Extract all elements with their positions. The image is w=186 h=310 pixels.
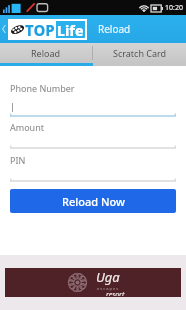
button[interactable]: Uga Resorts advertisement <box>5 268 181 297</box>
staticText: e s c a p e s <box>97 286 119 291</box>
staticText: Reload Now <box>62 194 125 209</box>
staticText: Amount <box>10 121 44 133</box>
staticText: resort <box>106 290 125 296</box>
staticText: TOP <box>25 20 55 40</box>
button[interactable]: Scratch Card <box>93 43 186 63</box>
button[interactable]: Reload <box>0 43 92 63</box>
staticText: Reload <box>98 22 131 36</box>
staticText: Phone Number <box>10 82 75 94</box>
button[interactable]: TOP <box>8 19 87 40</box>
staticText: 10:20 <box>165 3 183 13</box>
button[interactable]: Back <box>0 15 8 43</box>
staticText: Uga <box>96 268 120 286</box>
button[interactable]: Reload Now <box>10 189 176 213</box>
staticText: PIN <box>10 154 26 166</box>
staticText: Life <box>57 21 84 38</box>
staticText: Scratch Card <box>113 47 167 59</box>
staticText: Reload <box>31 47 61 59</box>
